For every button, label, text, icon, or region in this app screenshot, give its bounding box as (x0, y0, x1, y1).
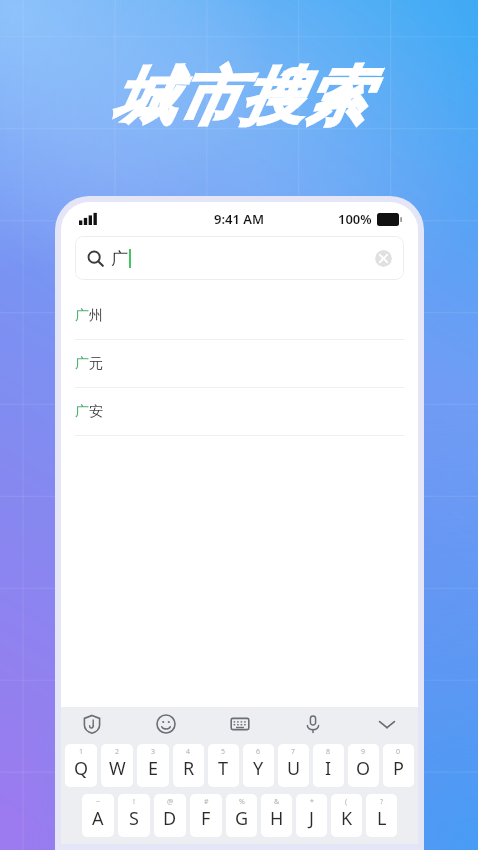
button[interactable]: 3 (137, 744, 169, 787)
staticText: 4 (186, 747, 191, 757)
staticText: @ (167, 797, 174, 807)
button[interactable]: 7 (278, 744, 309, 787)
staticText: 广州 (75, 307, 103, 325)
button[interactable]: 6 (243, 744, 274, 787)
staticText: ( (345, 797, 348, 807)
staticText: R (183, 756, 195, 781)
button[interactable]: 8 (313, 744, 344, 787)
staticText: Y (253, 756, 264, 781)
button[interactable]: ~ (82, 794, 114, 837)
staticText: 2 (115, 747, 120, 757)
button[interactable]: * (296, 794, 327, 837)
button[interactable]: 2 (101, 744, 133, 787)
staticText: 1 (79, 747, 84, 757)
staticText: 广安 (75, 403, 103, 421)
staticText: ~ (96, 797, 101, 807)
staticText: 5 (221, 747, 226, 757)
button[interactable]: 广州 (61, 292, 418, 340)
button[interactable]: @ (154, 794, 186, 837)
staticText: 100% (338, 210, 372, 228)
staticText: D (163, 806, 177, 831)
staticText: 城市搜索 (111, 58, 367, 136)
staticText: 广元 (75, 355, 103, 373)
staticText: E (148, 756, 159, 781)
staticText: I (325, 756, 332, 781)
button[interactable]: Voice input (298, 709, 328, 739)
button[interactable]: 9 (348, 744, 379, 787)
staticText: & (274, 797, 280, 807)
staticText: K (341, 806, 353, 831)
staticText: T (218, 756, 229, 781)
staticText: 7 (291, 747, 296, 757)
staticText: 3 (151, 747, 156, 757)
button[interactable]: 广元 (61, 340, 418, 388)
staticText: J (309, 806, 314, 831)
staticText: W (109, 756, 126, 781)
staticText: F (201, 806, 211, 831)
staticText: ! (133, 797, 135, 807)
button[interactable]: Emoji (151, 709, 181, 739)
button[interactable]: ( (331, 794, 362, 837)
button[interactable]: ? (366, 794, 397, 837)
button[interactable]: 广安 (61, 388, 418, 436)
staticText: ? (380, 797, 384, 807)
button[interactable]: 1 (65, 744, 97, 787)
staticText: 广 (111, 248, 128, 269)
staticText: * (310, 797, 314, 807)
staticText: L (377, 806, 387, 831)
button[interactable]: Hide keyboard (372, 709, 402, 739)
button[interactable]: ! (118, 794, 150, 837)
button[interactable]: % (226, 794, 257, 837)
button[interactable]: # (190, 794, 222, 837)
staticText: O (356, 756, 371, 781)
button[interactable]: & (261, 794, 292, 837)
button[interactable]: 4 (173, 744, 204, 787)
staticText: P (393, 756, 404, 781)
staticText: 6 (256, 747, 261, 757)
staticText: 9:41 AM (214, 210, 265, 228)
button[interactable]: 5 (208, 744, 239, 787)
staticText: U (287, 756, 301, 781)
button[interactable]: Keyboard (225, 709, 255, 739)
staticText: 9 (361, 747, 366, 757)
staticText: % (239, 797, 245, 807)
button[interactable]: Security (77, 709, 107, 739)
staticText: S (129, 806, 139, 831)
staticText: H (270, 806, 284, 831)
button[interactable]: Clear (375, 250, 392, 267)
button[interactable]: 0 (383, 744, 414, 787)
button[interactable]: 广 (75, 236, 404, 280)
staticText: 0 (396, 747, 401, 757)
staticText: # (204, 797, 209, 807)
staticText: A (92, 806, 104, 831)
staticText: 8 (326, 747, 331, 757)
staticText: Q (74, 756, 89, 781)
staticText: G (235, 806, 249, 831)
